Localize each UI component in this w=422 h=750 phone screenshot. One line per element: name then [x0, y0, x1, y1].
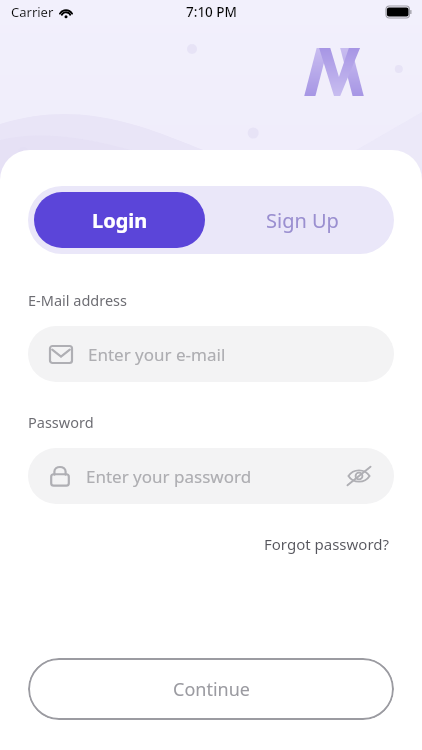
staticText: Enter your e-mail: [88, 343, 226, 366]
button[interactable]: Login: [34, 192, 205, 248]
staticText: Continue: [173, 677, 250, 702]
button[interactable]: Enter your e-mail: [28, 326, 394, 382]
staticText: Enter your password: [86, 465, 344, 488]
button[interactable]: Enter your password: [28, 448, 394, 504]
staticText: Carrier: [11, 3, 54, 21]
staticText: 7:10 PM: [186, 3, 237, 21]
button[interactable]: Continue: [28, 658, 394, 720]
staticText: Forgot password?: [264, 534, 390, 554]
button[interactable]: Forgot password?: [260, 530, 394, 558]
button[interactable]: Show password: [344, 461, 374, 491]
staticText: Login: [92, 207, 148, 234]
other: App logo: [303, 47, 365, 97]
staticText: Sign Up: [266, 207, 339, 234]
staticText: Password: [28, 412, 94, 432]
staticText: E-Mail address: [28, 290, 128, 310]
button[interactable]: Sign Up: [211, 186, 394, 254]
